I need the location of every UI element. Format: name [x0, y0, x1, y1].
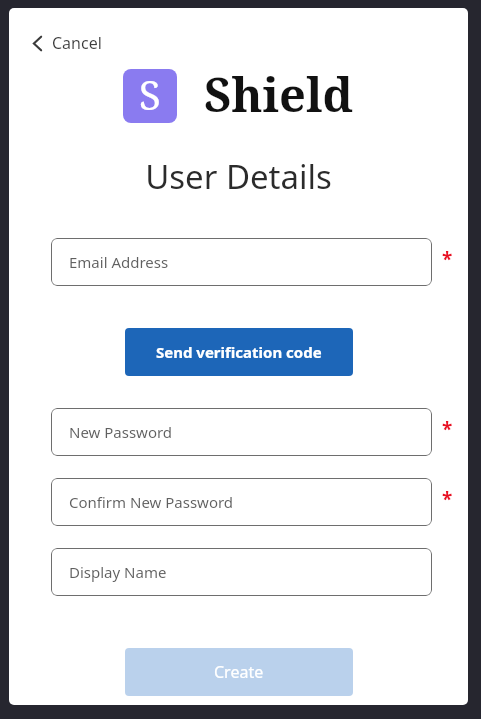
button[interactable]: Cancel	[25, 28, 108, 58]
staticText: Shield	[204, 62, 354, 126]
button[interactable]: New Password	[51, 408, 432, 456]
staticText: Create	[214, 661, 264, 683]
staticText: User Details	[9, 154, 468, 199]
staticText: Display Name	[69, 562, 167, 582]
staticText: Email Address	[69, 252, 169, 272]
button[interactable]: Create	[125, 648, 353, 696]
staticText: *	[442, 486, 453, 512]
staticText: Cancel	[52, 32, 102, 54]
staticText: *	[442, 246, 453, 272]
staticText: New Password	[69, 422, 173, 442]
button[interactable]: Send verification code	[125, 328, 353, 376]
staticText: S	[139, 69, 161, 121]
button[interactable]: Display Name	[51, 548, 432, 596]
staticText: Confirm New Password	[69, 492, 234, 512]
button[interactable]: Confirm New Password	[51, 478, 432, 526]
staticText: *	[442, 416, 453, 442]
button[interactable]: Email Address	[51, 238, 432, 286]
staticText: Send verification code	[156, 342, 322, 362]
